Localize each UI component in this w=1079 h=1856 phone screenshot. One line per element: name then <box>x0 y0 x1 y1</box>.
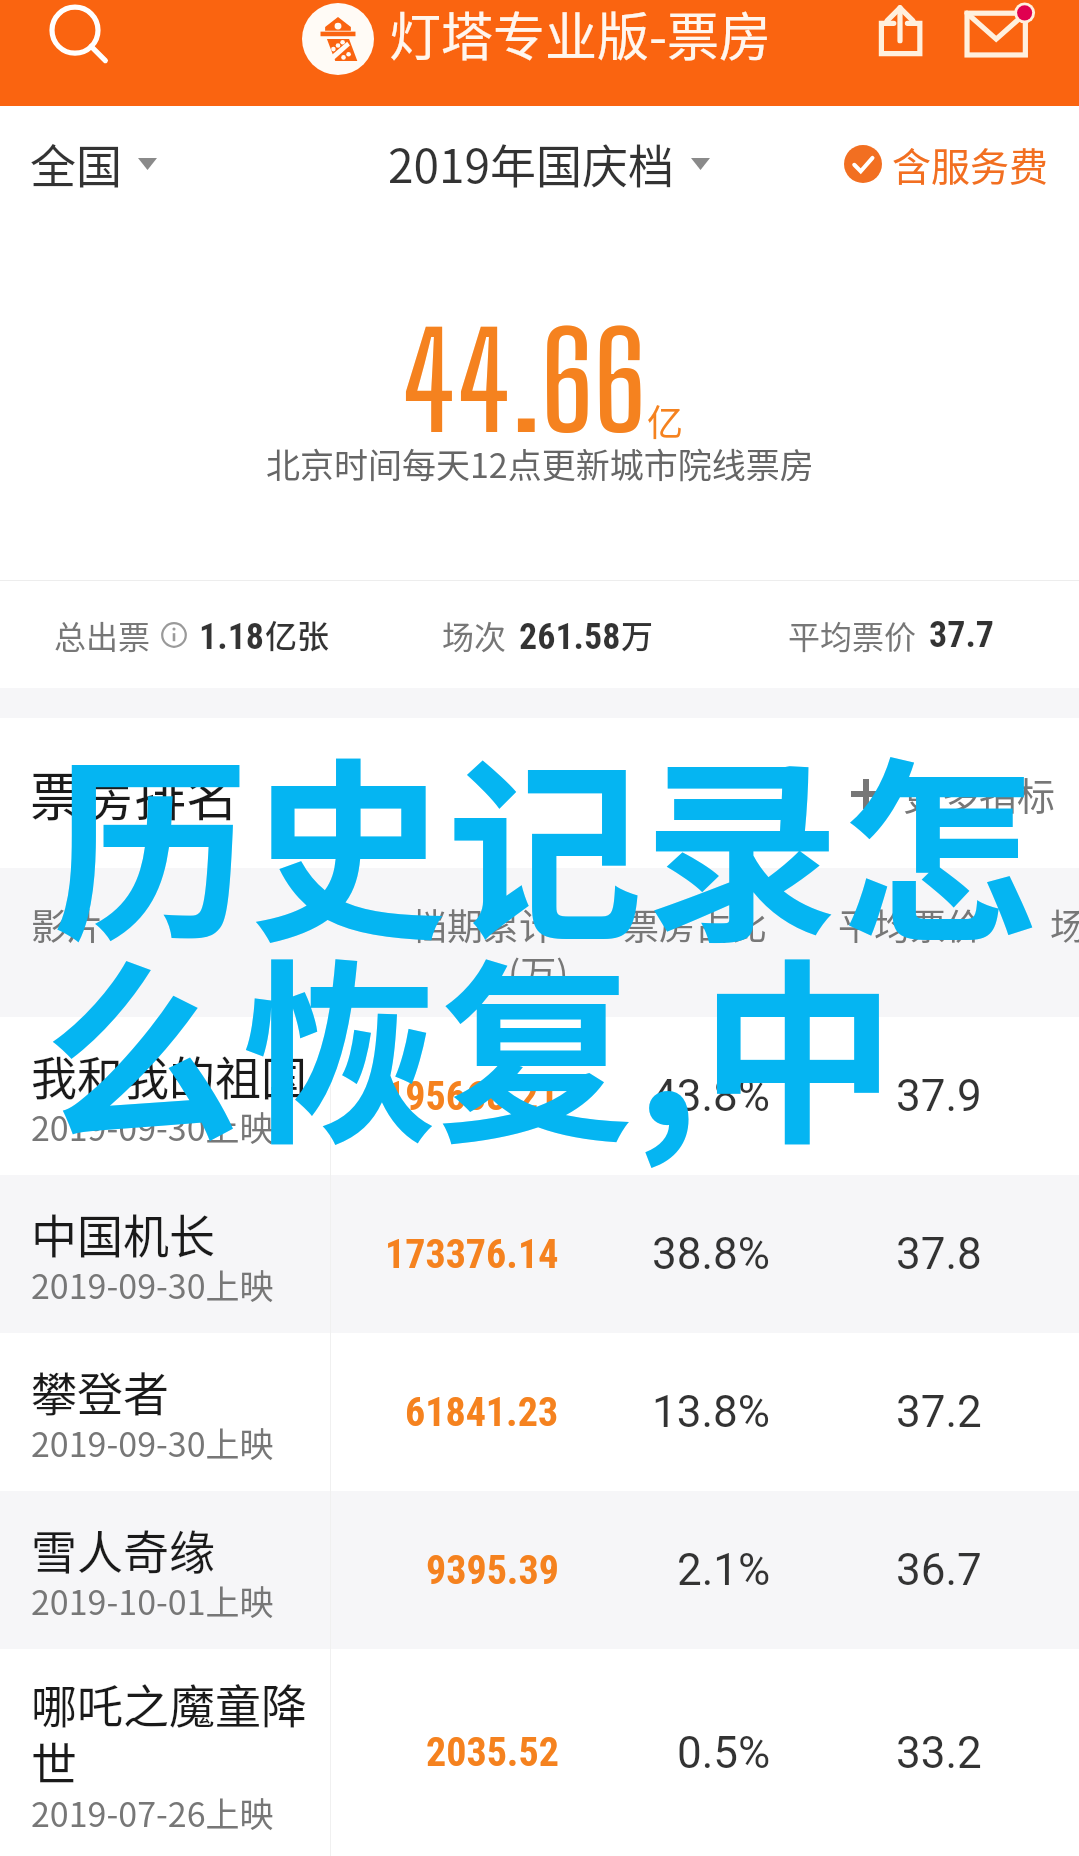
button[interactable]: Search <box>44 2 106 64</box>
staticText: 万 <box>621 611 654 657</box>
staticText: 2019-09-30上映 <box>31 1102 274 1151</box>
staticText: 攀登者 <box>31 1358 169 1425</box>
staticText: 场次 <box>442 612 507 658</box>
staticText: 2019-09-30上映 <box>31 1260 274 1309</box>
staticText: 含服务费 <box>892 136 1049 192</box>
staticText: 么恢复,中 <box>44 899 897 1183</box>
staticText: 173376.14 <box>385 1231 559 1278</box>
staticText: 全国 <box>30 130 122 197</box>
staticText: 北京时间每天12点更新城市院线票房 <box>266 439 814 488</box>
staticText: 影片 <box>31 898 104 950</box>
staticText: 1.18 <box>199 616 265 658</box>
staticText: 33.2 <box>896 1727 982 1779</box>
staticText: 36.7 <box>896 1544 982 1596</box>
button[interactable]: 全国 <box>30 130 157 197</box>
staticText: 261.58 <box>519 616 621 658</box>
staticText: 平均票价 <box>788 612 917 658</box>
staticText: 雪人奇缘 <box>31 1516 215 1583</box>
staticText: 61841.23 <box>405 1389 559 1436</box>
button[interactable]: 中国机长 <box>0 1175 1079 1333</box>
button[interactable]: 哪吒之魔童降世 <box>0 1649 1079 1856</box>
staticText: 票房排名 <box>30 756 239 831</box>
staticText: 亿张 <box>265 611 330 657</box>
staticText: 更多指标 <box>903 766 1056 821</box>
staticText: 灯塔专业版-票房 <box>389 0 772 71</box>
staticText: 37.9 <box>896 1070 982 1122</box>
staticText: 2019-10-01上映 <box>31 1576 274 1625</box>
staticText: 13.8% <box>652 1386 771 1438</box>
button[interactable]: Share <box>869 1 931 63</box>
staticText: 37.7 <box>929 614 995 656</box>
staticText: 场 <box>1050 898 1079 950</box>
staticText: 37.8 <box>896 1228 982 1280</box>
staticText: 2019年国庆档 <box>388 130 675 197</box>
staticText: 195668.21 <box>385 1073 559 1120</box>
button[interactable]: 更多指标 <box>851 766 1056 821</box>
staticText: 9395.39 <box>426 1547 559 1594</box>
staticText: 票房占比 <box>623 898 768 950</box>
staticText: 44.66 <box>402 302 647 460</box>
staticText: 亿 <box>647 394 684 446</box>
staticText: 37.2 <box>896 1386 982 1438</box>
staticText: (万) <box>508 945 569 997</box>
staticText: 平均票价 <box>838 898 983 950</box>
button[interactable]: 含服务费 <box>844 136 1049 192</box>
staticText: 档期累计 <box>411 898 556 950</box>
staticText: 2019-07-26上映 <box>31 1788 274 1837</box>
staticText: 中国机长 <box>31 1200 215 1267</box>
button[interactable]: 我和我的祖国 <box>0 1017 1079 1175</box>
staticText: 历史记录怎 <box>53 697 1039 981</box>
button[interactable]: 2019年国庆档 <box>388 130 710 197</box>
staticText: 38.8% <box>652 1228 771 1280</box>
staticText: 43.8% <box>652 1070 771 1122</box>
button[interactable]: Messages <box>962 6 1034 78</box>
staticText: 哪吒之魔童降世 <box>31 1670 321 1795</box>
button[interactable]: 攀登者 <box>0 1333 1079 1491</box>
staticText: 2.1% <box>677 1544 771 1596</box>
staticText: 2019-09-30上映 <box>31 1418 274 1467</box>
staticText: 总出票 <box>54 612 151 658</box>
button[interactable]: 雪人奇缘 <box>0 1491 1079 1649</box>
staticText: 2035.52 <box>426 1729 559 1776</box>
staticText: 0.5% <box>677 1727 771 1779</box>
staticText: 我和我的祖国 <box>31 1042 307 1109</box>
